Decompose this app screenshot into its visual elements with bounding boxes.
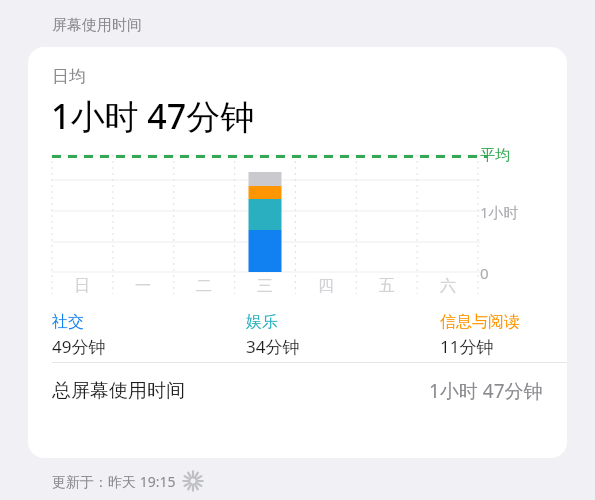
staticText: 日 — [74, 276, 90, 296]
staticText: 三 — [257, 276, 273, 296]
staticText: 一 — [135, 276, 151, 296]
staticText: 1小时 — [480, 202, 519, 222]
staticText: 四 — [318, 276, 334, 296]
staticText: 信息与阅读 — [440, 312, 520, 332]
staticText: 11分钟 — [440, 335, 494, 358]
other: Refreshing — [182, 470, 204, 492]
button[interactable]: 社交 — [52, 312, 106, 358]
staticText: 平均 — [480, 146, 510, 165]
button[interactable]: 信息与阅读 — [440, 312, 520, 358]
button[interactable]: 娱乐 — [246, 312, 300, 358]
staticText: 1小时 47分钟 — [429, 378, 543, 404]
staticText: 0 — [480, 263, 489, 283]
staticText: 49分钟 — [52, 335, 106, 358]
button[interactable]: 总屏幕使用时间 — [28, 363, 567, 419]
staticText: 总屏幕使用时间 — [52, 379, 185, 403]
staticText: 屏幕使用时间 — [52, 16, 142, 35]
staticText: 社交 — [52, 312, 84, 332]
staticText: 五 — [379, 276, 395, 296]
staticText: 娱乐 — [246, 312, 278, 332]
staticText: 二 — [196, 276, 212, 296]
staticText: 更新于：昨天 19:15 — [52, 472, 176, 491]
staticText: 六 — [440, 276, 456, 296]
staticText: 日均 — [52, 66, 86, 87]
button[interactable]: 日均 — [28, 47, 567, 458]
staticText: 1小时 47分钟 — [51, 93, 255, 139]
staticText: 34分钟 — [246, 335, 300, 358]
